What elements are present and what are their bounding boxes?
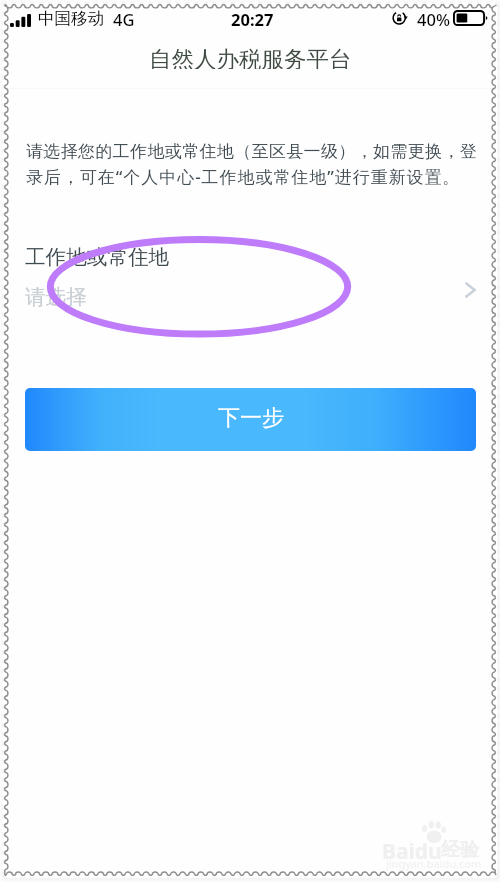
- staticText: 经验: [441, 838, 479, 862]
- staticText: 40%: [417, 8, 450, 30]
- staticText: jingyan.baidu.com: [386, 856, 482, 871]
- staticText: 中国移动: [38, 8, 104, 29]
- staticText: 请选择: [25, 284, 87, 310]
- staticText: 工作地或常住地: [25, 244, 170, 270]
- staticText: 下一步: [218, 404, 284, 432]
- staticText: 请选择您的工作地或常住地（至区县一级），如需更换，登: [26, 141, 478, 162]
- staticText: 录后，可在“个人中心-工作地或常住地”进行重新设置。: [26, 165, 461, 188]
- button[interactable]: 工作地或常住地: [0, 232, 500, 322]
- staticText: 4G: [113, 8, 135, 30]
- staticText: 自然人办税服务平台: [149, 45, 352, 69]
- staticText: 20:27: [231, 8, 274, 30]
- staticText: Baidu: [382, 837, 442, 866]
- button[interactable]: 下一步: [25, 388, 476, 451]
